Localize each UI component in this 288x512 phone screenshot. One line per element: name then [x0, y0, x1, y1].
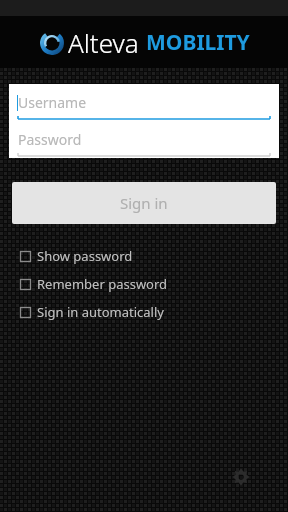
- staticText: Sign in automatically: [37, 303, 164, 321]
- staticText: Remember password: [37, 275, 168, 293]
- staticText: Sign in: [120, 193, 168, 213]
- button[interactable]: Show password: [0, 242, 288, 270]
- button[interactable]: Settings: [230, 466, 252, 488]
- button[interactable]: Username: [9, 84, 279, 121]
- staticText: Username: [18, 93, 87, 112]
- button[interactable]: Password: [9, 121, 279, 158]
- staticText: Show password: [37, 247, 133, 265]
- button[interactable]: Remember password: [0, 270, 288, 298]
- button[interactable]: Sign in: [12, 182, 276, 224]
- staticText: MOBILITY: [146, 28, 250, 57]
- button[interactable]: Sign in automatically: [0, 298, 288, 326]
- staticText: Alteva: [68, 25, 139, 60]
- staticText: Password: [18, 130, 82, 149]
